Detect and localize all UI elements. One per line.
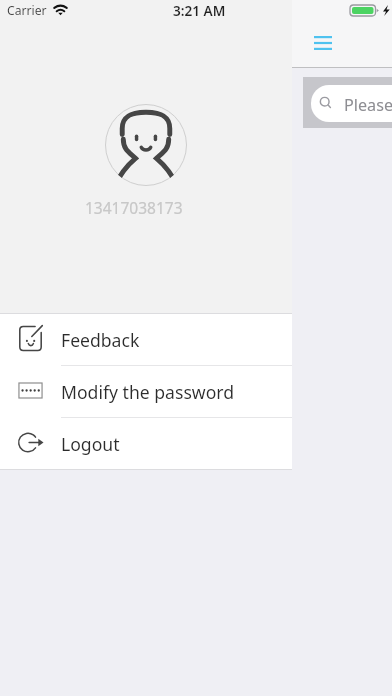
button[interactable]: Modify the password (0, 366, 292, 417)
staticText: Feedback (61, 328, 140, 352)
staticText: 13417038173 (85, 197, 183, 218)
staticText: Modify the password (61, 380, 235, 404)
button[interactable] (311, 85, 392, 122)
staticText: Please enter (344, 94, 392, 116)
button[interactable]: Menu (306, 26, 340, 60)
staticText: Carrier (7, 2, 47, 19)
button[interactable]: Feedback (0, 314, 292, 365)
staticText: Logout (61, 432, 120, 456)
button[interactable]: Logout (0, 418, 292, 469)
staticText: 3:21 AM (173, 1, 226, 20)
